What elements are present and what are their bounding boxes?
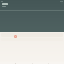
button[interactable] [1, 33, 63, 37]
button[interactable]: Add [14, 35, 17, 38]
button[interactable] [2, 3, 8, 5]
